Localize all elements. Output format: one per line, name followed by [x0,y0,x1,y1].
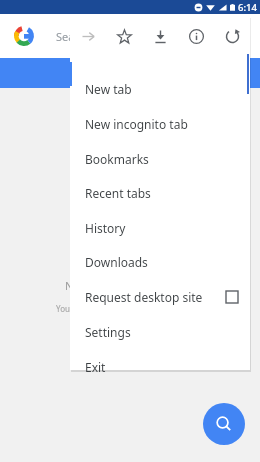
staticText: N [65,278,74,293]
button[interactable]: New incognito tab [70,107,250,141]
button[interactable]: Recent tabs [70,176,250,210]
staticText: Bookmarks [85,151,149,167]
staticText: Recent tabs [85,185,151,201]
staticText: Exit [85,359,106,375]
button[interactable]: Forward [70,16,106,56]
button[interactable]: Bookmarks [70,142,250,176]
staticText: New tab [85,81,132,97]
button[interactable]: History [70,211,250,245]
staticText: Downloads [85,254,148,270]
button[interactable]: Page info [178,16,214,56]
button[interactable]: Download page [142,16,178,56]
staticText: History [85,220,126,236]
button[interactable]: New tab [70,72,250,106]
staticText: Your [56,303,74,314]
button[interactable]: Downloads [70,245,250,279]
button[interactable]: Request desktop site [70,280,250,314]
staticText: 6:14 [238,1,257,14]
button[interactable]: Reload [214,16,250,56]
staticText: Search or type web address [56,29,199,44]
staticText: Request desktop site [85,289,203,305]
staticText: New incognito tab [85,116,188,132]
button[interactable]: Exit [70,350,250,384]
staticText: Settings [85,324,131,340]
button[interactable]: Bookmark [106,16,142,56]
button[interactable]: Settings [70,315,250,349]
button[interactable]: Search [203,403,245,445]
